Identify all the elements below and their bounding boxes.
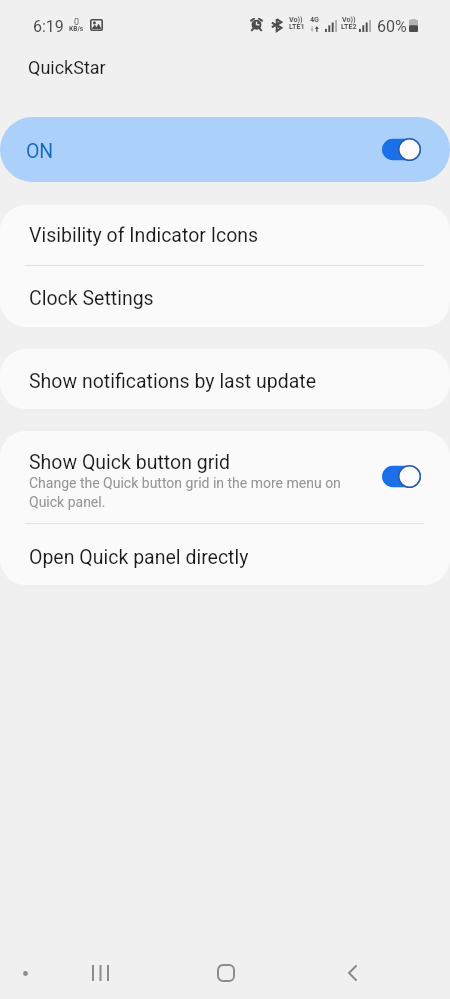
staticText: 60% — [377, 17, 407, 36]
staticText: Vo)) — [342, 15, 356, 23]
button[interactable]: ON — [0, 117, 450, 182]
staticText: LTE2 — [341, 22, 357, 30]
button[interactable]: Show Quick button grid — [382, 465, 421, 488]
staticText: 4G — [310, 15, 320, 23]
staticText: LTE1 — [289, 22, 305, 30]
staticText: Show notifications by last update — [29, 370, 317, 393]
button[interactable] — [0, 349, 450, 409]
button[interactable] — [0, 431, 450, 523]
staticText: KB/s — [69, 25, 84, 33]
staticText: Show Quick button grid — [29, 451, 231, 474]
button[interactable]: Home — [206, 953, 246, 993]
staticText: Visibility of Indicator Icons — [29, 224, 259, 247]
staticText: ON — [26, 140, 54, 163]
staticText: QuickStar — [28, 57, 106, 78]
button[interactable] — [0, 205, 450, 265]
staticText: 0 — [74, 17, 80, 28]
button[interactable] — [0, 266, 450, 327]
button[interactable]: Turn QuickStar off — [382, 138, 421, 161]
staticText: Vo)) — [289, 15, 303, 23]
button[interactable] — [0, 524, 450, 585]
staticText: 6:19 — [33, 17, 64, 36]
staticText: Clock Settings — [29, 287, 154, 310]
staticText: Open Quick panel directly — [29, 546, 249, 569]
button[interactable]: Recent apps — [80, 953, 120, 993]
staticText: Change the Quick button grid in the more… — [29, 475, 359, 510]
button[interactable]: Back — [332, 953, 372, 993]
